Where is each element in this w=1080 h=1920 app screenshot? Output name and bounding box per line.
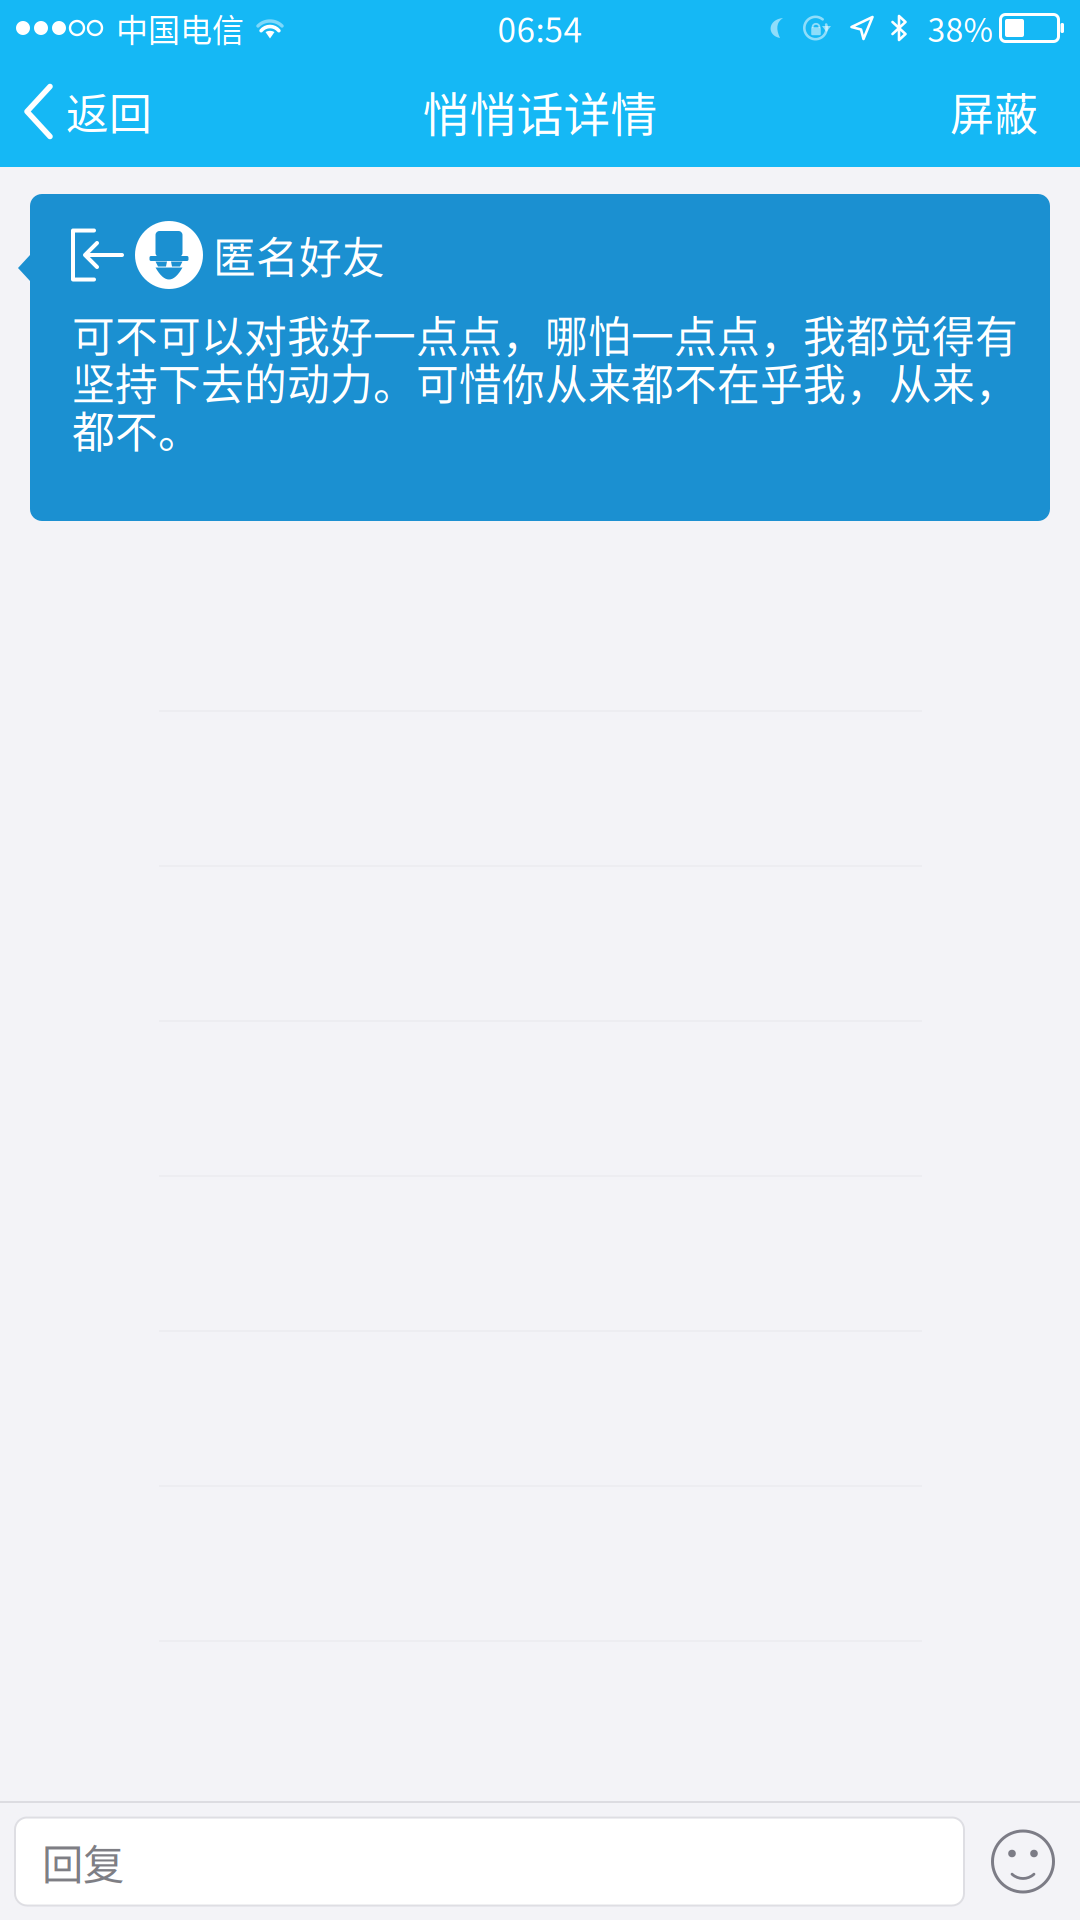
staticText: 38% <box>927 5 992 51</box>
staticText: 匿名好友 <box>213 224 385 286</box>
staticText: 悄悄话详情 <box>422 78 657 145</box>
staticText: 屏蔽 <box>950 80 1038 143</box>
button[interactable]: 返回 <box>0 57 172 165</box>
staticText: 中国电信 <box>116 5 244 51</box>
button[interactable]: Emoji <box>988 1826 1058 1896</box>
staticText: 返回 <box>66 81 152 142</box>
staticText: 06:54 <box>497 4 582 52</box>
button[interactable]: 匿名好友 <box>18 194 1050 521</box>
button[interactable]: 屏蔽 <box>930 57 1080 165</box>
staticText: 可不可以对我好一点点，哪怕一点点，我都觉得有坚持下去的动力。可惜你从来都不在乎我… <box>72 303 1018 460</box>
button[interactable]: 回复 <box>15 1817 964 1905</box>
staticText: 回复 <box>42 1832 124 1891</box>
